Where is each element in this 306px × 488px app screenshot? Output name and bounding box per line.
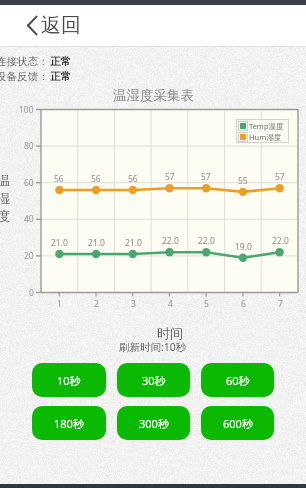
- staticText: 时间: [157, 325, 183, 341]
- staticText: 180秒: [54, 416, 84, 431]
- staticText: 湿: [0, 190, 10, 206]
- staticText: 19.0: [235, 241, 252, 253]
- staticText: 0: [29, 287, 34, 299]
- staticText: 21.0: [51, 237, 68, 249]
- staticText: 56: [128, 173, 138, 185]
- staticText: 设备反馈：: [0, 70, 49, 83]
- staticText: 10秒: [57, 373, 81, 388]
- staticText: 55: [238, 175, 248, 187]
- staticText: 3: [131, 298, 136, 310]
- staticText: 正常: [50, 55, 71, 68]
- staticText: 60秒: [226, 373, 250, 388]
- staticText: 21.0: [125, 237, 142, 249]
- staticText: 600秒: [223, 416, 253, 431]
- staticText: Temp温度: [249, 121, 284, 131]
- staticText: 57: [275, 171, 285, 183]
- staticText: 21.0: [88, 237, 105, 249]
- staticText: 56: [91, 173, 101, 185]
- staticText: 22.0: [162, 235, 179, 247]
- button[interactable]: 180秒: [32, 406, 106, 440]
- staticText: 返回: [41, 13, 81, 38]
- button[interactable]: 30秒: [117, 363, 190, 397]
- button[interactable]: 600秒: [201, 406, 274, 440]
- staticText: 度: [0, 208, 10, 224]
- staticText: 57: [165, 171, 175, 183]
- staticText: 56: [54, 173, 64, 185]
- staticText: 1: [57, 298, 62, 310]
- staticText: 6: [241, 298, 246, 310]
- button[interactable]: 返回: [0, 5, 306, 46]
- staticText: 30秒: [142, 373, 166, 388]
- staticText: 4: [168, 298, 173, 310]
- staticText: 100: [19, 104, 34, 116]
- button[interactable]: 60秒: [201, 363, 274, 397]
- staticText: 57: [201, 171, 211, 183]
- staticText: 7: [278, 298, 283, 310]
- staticText: 22.0: [272, 235, 289, 247]
- staticText: 40: [24, 213, 34, 225]
- staticText: 22.0: [198, 235, 215, 247]
- staticText: 刷新时间:10秒: [119, 340, 187, 354]
- button[interactable]: 300秒: [117, 406, 190, 440]
- staticText: Hum湿度: [249, 132, 282, 142]
- staticText: 20: [24, 250, 34, 262]
- staticText: 温: [0, 172, 10, 188]
- staticText: 80: [24, 140, 34, 152]
- staticText: 温湿度采集表: [113, 87, 194, 104]
- staticText: 60: [24, 177, 34, 189]
- staticText: 2: [94, 298, 99, 310]
- staticText: 正常: [50, 70, 71, 83]
- button[interactable]: 10秒: [32, 363, 106, 397]
- staticText: 5: [204, 298, 209, 310]
- staticText: 300秒: [139, 416, 169, 431]
- staticText: 连接状态：: [0, 55, 49, 68]
